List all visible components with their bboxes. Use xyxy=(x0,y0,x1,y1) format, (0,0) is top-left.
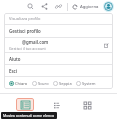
staticText: Visualizza profilo xyxy=(9,16,41,21)
staticText: Esci xyxy=(9,68,18,74)
staticText: Aggiorna xyxy=(80,4,99,10)
button[interactable]: Account xyxy=(103,1,114,12)
button[interactable]: Aggiorna xyxy=(71,3,100,11)
button[interactable]: Esci xyxy=(4,65,113,76)
button[interactable]: Scuro xyxy=(32,81,49,86)
staticText: @gmail.com xyxy=(22,39,49,45)
button[interactable]: Chiaro xyxy=(9,81,28,86)
button[interactable]: Vista dettagli xyxy=(51,99,63,111)
button[interactable]: @gmail.com xyxy=(4,38,113,52)
button[interactable]: Link xyxy=(53,1,64,12)
staticText: System xyxy=(82,81,96,86)
button[interactable]: Seppia xyxy=(53,81,72,86)
button[interactable]: System xyxy=(76,81,96,86)
staticText: Mostra contenuti come elenco xyxy=(3,113,55,118)
staticText: Scuro xyxy=(38,81,49,86)
staticText: Gestisci il tuo account xyxy=(9,46,46,51)
button[interactable]: Vista griglia xyxy=(81,99,93,111)
button[interactable]: Gestisci profilo xyxy=(4,25,113,37)
button[interactable]: Cerca xyxy=(25,1,36,12)
staticText: Seppia xyxy=(59,81,72,86)
button[interactable]: Mostra contenuti come elenco xyxy=(16,98,34,111)
button[interactable]: Visualizza profilo xyxy=(4,13,113,24)
staticText: Chiaro xyxy=(15,81,28,86)
staticText: Gestisci profilo xyxy=(9,28,41,34)
button[interactable]: Condividi xyxy=(39,1,50,12)
button[interactable]: Apri account xyxy=(102,41,110,49)
staticText: Aiuto xyxy=(9,56,21,62)
button[interactable]: Aiuto xyxy=(4,53,113,64)
